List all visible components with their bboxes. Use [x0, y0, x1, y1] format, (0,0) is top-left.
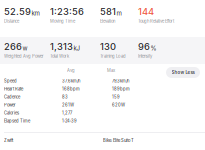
staticText: km: [32, 10, 40, 17]
staticText: 266: [4, 41, 22, 52]
staticText: Intensity: [138, 54, 152, 59]
staticText: Power: [4, 102, 16, 107]
staticText: Avg: [67, 68, 75, 73]
staticText: m: [117, 10, 122, 17]
staticText: 79.3km/h: [112, 78, 129, 83]
button[interactable]: Show Less: [166, 67, 200, 78]
staticText: Heart Rate: [4, 86, 23, 91]
staticText: Moving Time: [50, 19, 75, 24]
staticText: 1,313: [50, 41, 73, 52]
staticText: Bike: Elite Suito T: [103, 138, 134, 143]
staticText: Show Less: [171, 70, 194, 75]
staticText: Total Work: [50, 54, 69, 59]
staticText: 189bpm: [112, 86, 130, 91]
staticText: 168bpm: [62, 86, 80, 91]
staticText: Cadence: [4, 94, 20, 99]
staticText: Calories: [4, 110, 19, 115]
staticText: Tough Relative Effort: [138, 19, 174, 24]
staticText: 130: [100, 41, 116, 52]
staticText: 144: [138, 6, 154, 17]
staticText: 52.59: [4, 6, 31, 17]
staticText: 159: [112, 94, 120, 99]
staticText: Max: [107, 68, 115, 73]
staticText: 83: [62, 94, 68, 99]
staticText: Zwift: [4, 138, 13, 143]
staticText: 1:24:39: [62, 118, 77, 123]
staticText: 1,277: [62, 110, 72, 115]
staticText: Elapsed Time: [4, 118, 30, 123]
staticText: kJ: [74, 45, 81, 52]
staticText: Elevation: [100, 19, 115, 24]
staticText: 37.6km/h: [62, 78, 80, 83]
staticText: Speed: [4, 78, 17, 83]
staticText: 96: [138, 41, 150, 52]
staticText: Weighted Avg Power: [4, 54, 44, 59]
staticText: Training Load: [100, 54, 126, 59]
staticText: %: [151, 45, 157, 52]
staticText: Distance: [4, 19, 19, 24]
staticText: 261W: [62, 102, 74, 107]
staticText: 620W: [112, 102, 125, 107]
staticText: w: [23, 45, 28, 52]
staticText: 1:23:56: [50, 6, 84, 17]
staticText: 581: [100, 6, 116, 17]
